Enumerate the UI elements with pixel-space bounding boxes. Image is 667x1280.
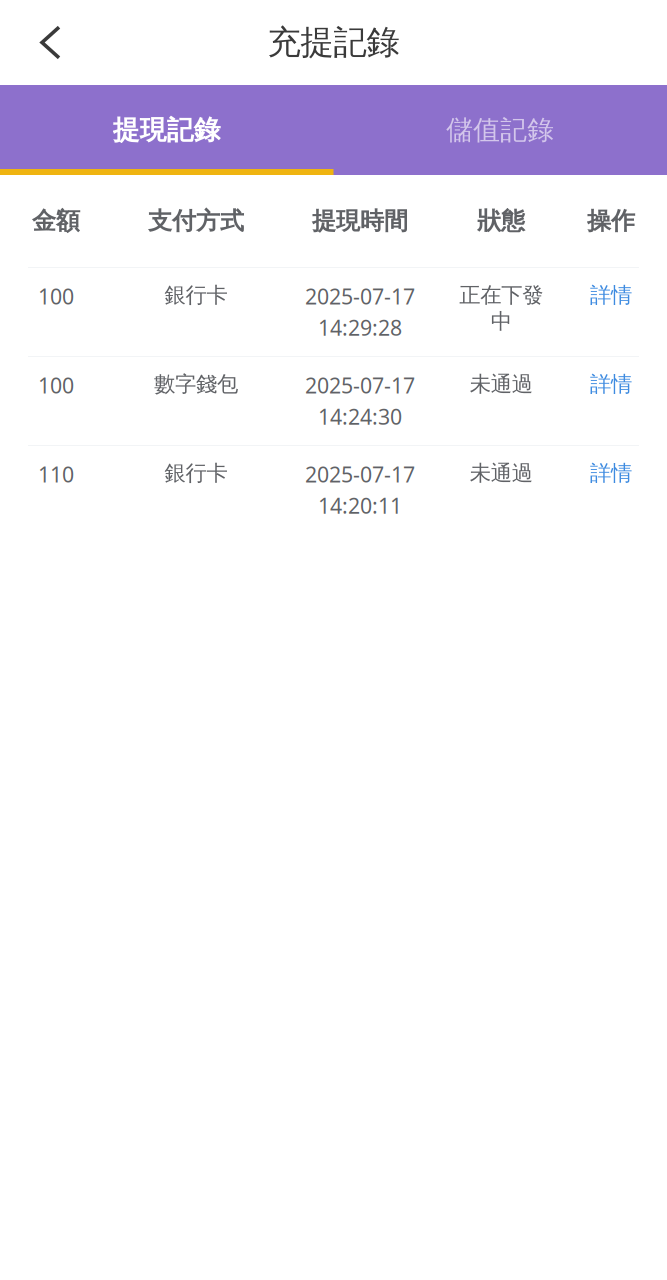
staticText: 詳情 (590, 460, 632, 486)
button[interactable]: Back (0, 0, 101, 85)
staticText: 銀行卡 (164, 460, 227, 486)
staticText: 金額 (32, 206, 80, 236)
staticText: 銀行卡 (164, 282, 227, 308)
staticText: 14:20:11 (318, 491, 402, 520)
staticText: 2025-07-17 (305, 371, 415, 399)
staticText: 正在下發中 (459, 282, 543, 334)
staticText: 詳情 (590, 282, 632, 308)
staticText: 100 (38, 282, 74, 310)
staticText: 提現時間 (312, 206, 408, 236)
staticText: 充提記錄 (267, 22, 399, 63)
staticText: 數字錢包 (154, 371, 238, 397)
button[interactable]: 詳情 (562, 282, 660, 308)
staticText: 提現記錄 (113, 114, 221, 146)
button[interactable]: 詳情 (562, 371, 660, 397)
button[interactable]: 詳情 (562, 460, 660, 486)
staticText: 2025-07-17 (305, 282, 415, 310)
button[interactable]: 提現記錄 (0, 85, 333, 175)
button[interactable]: 儲值記錄 (333, 85, 667, 175)
staticText: 14:29:28 (318, 313, 402, 342)
staticText: 儲值記錄 (446, 114, 554, 146)
staticText: 110 (38, 460, 74, 488)
staticText: 詳情 (590, 371, 632, 397)
staticText: 支付方式 (148, 206, 244, 236)
staticText: 未通過 (469, 460, 532, 486)
staticText: 100 (38, 371, 74, 399)
staticText: 2025-07-17 (305, 460, 415, 488)
staticText: 狀態 (477, 206, 525, 236)
staticText: 14:24:30 (318, 402, 402, 431)
staticText: 操作 (587, 206, 635, 236)
staticText: 未通過 (469, 371, 532, 397)
